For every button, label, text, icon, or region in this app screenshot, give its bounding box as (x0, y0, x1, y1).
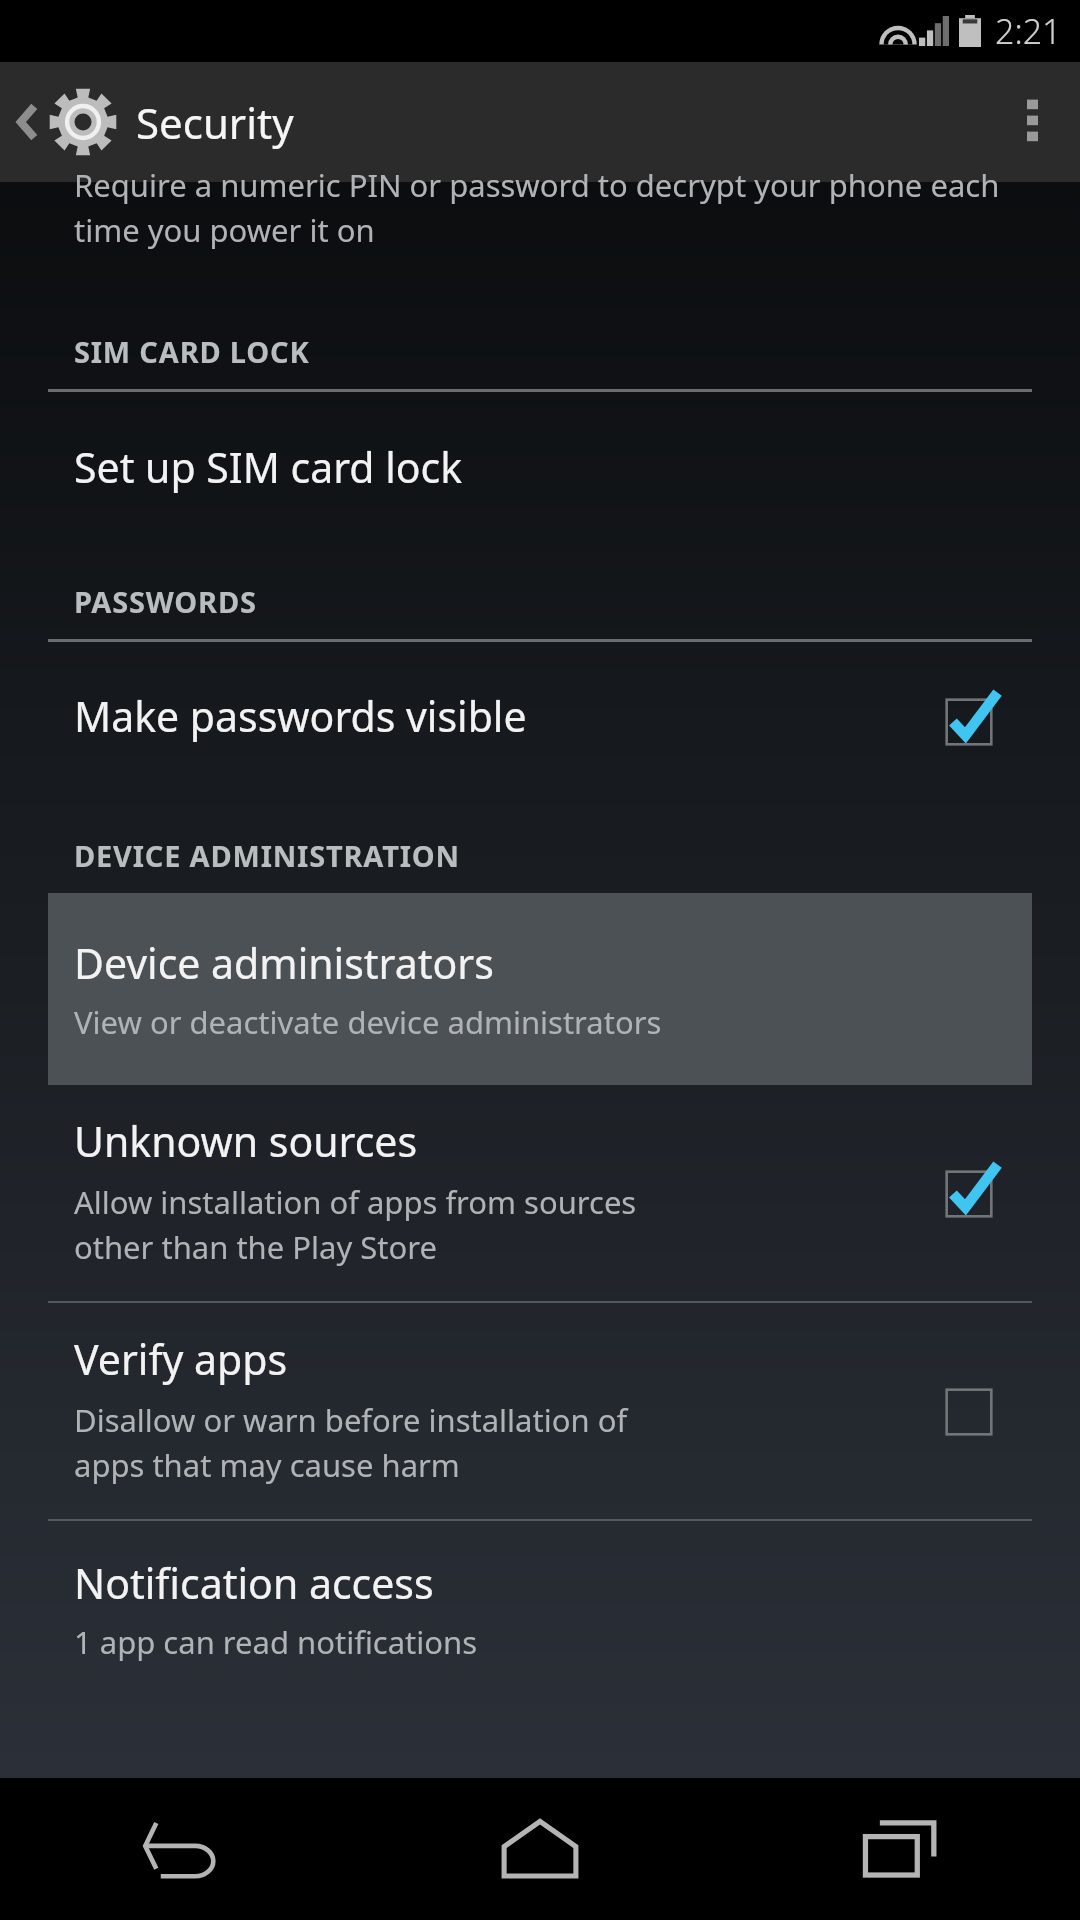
button[interactable]: Make passwords visible (0, 642, 1080, 802)
staticText: Allow installation of apps from sources … (74, 1181, 637, 1268)
button[interactable]: Unknown sources (0, 1085, 1080, 1303)
button[interactable]: Verify apps (0, 1303, 1080, 1521)
button[interactable]: Notification access (0, 1521, 1080, 1778)
staticText: Disallow or warn before installation of … (74, 1399, 628, 1486)
staticText: 1 app can read notifications (74, 1621, 478, 1663)
staticText: Device administrators (74, 935, 494, 991)
staticText: 2:21 (995, 8, 1062, 54)
staticText: DEVICE ADMINISTRATION (74, 836, 460, 875)
staticText: Verify apps (74, 1331, 288, 1387)
button[interactable]: Home (360, 1778, 720, 1920)
staticText: Make passwords visible (74, 688, 527, 744)
staticText: SIM CARD LOCK (74, 332, 310, 371)
button[interactable]: Navigate up (0, 62, 310, 182)
staticText: Notification access (74, 1555, 434, 1611)
staticText: PASSWORDS (74, 582, 257, 621)
staticText: Require a numeric PIN or password to dec… (74, 164, 1025, 251)
button[interactable]: Recent apps (720, 1778, 1080, 1920)
staticText: Unknown sources (74, 1113, 418, 1169)
staticText: Set up SIM card lock (74, 439, 463, 495)
staticText: View or deactivate device administrators (74, 1001, 662, 1043)
staticText: Security (136, 94, 294, 151)
button[interactable]: Device administrators (48, 893, 1032, 1085)
button[interactable]: Require a numeric PIN or password to dec… (0, 182, 1080, 280)
button[interactable]: More options (984, 62, 1080, 182)
button[interactable]: Back (0, 1778, 360, 1920)
button[interactable]: Set up SIM card lock (0, 392, 1080, 542)
